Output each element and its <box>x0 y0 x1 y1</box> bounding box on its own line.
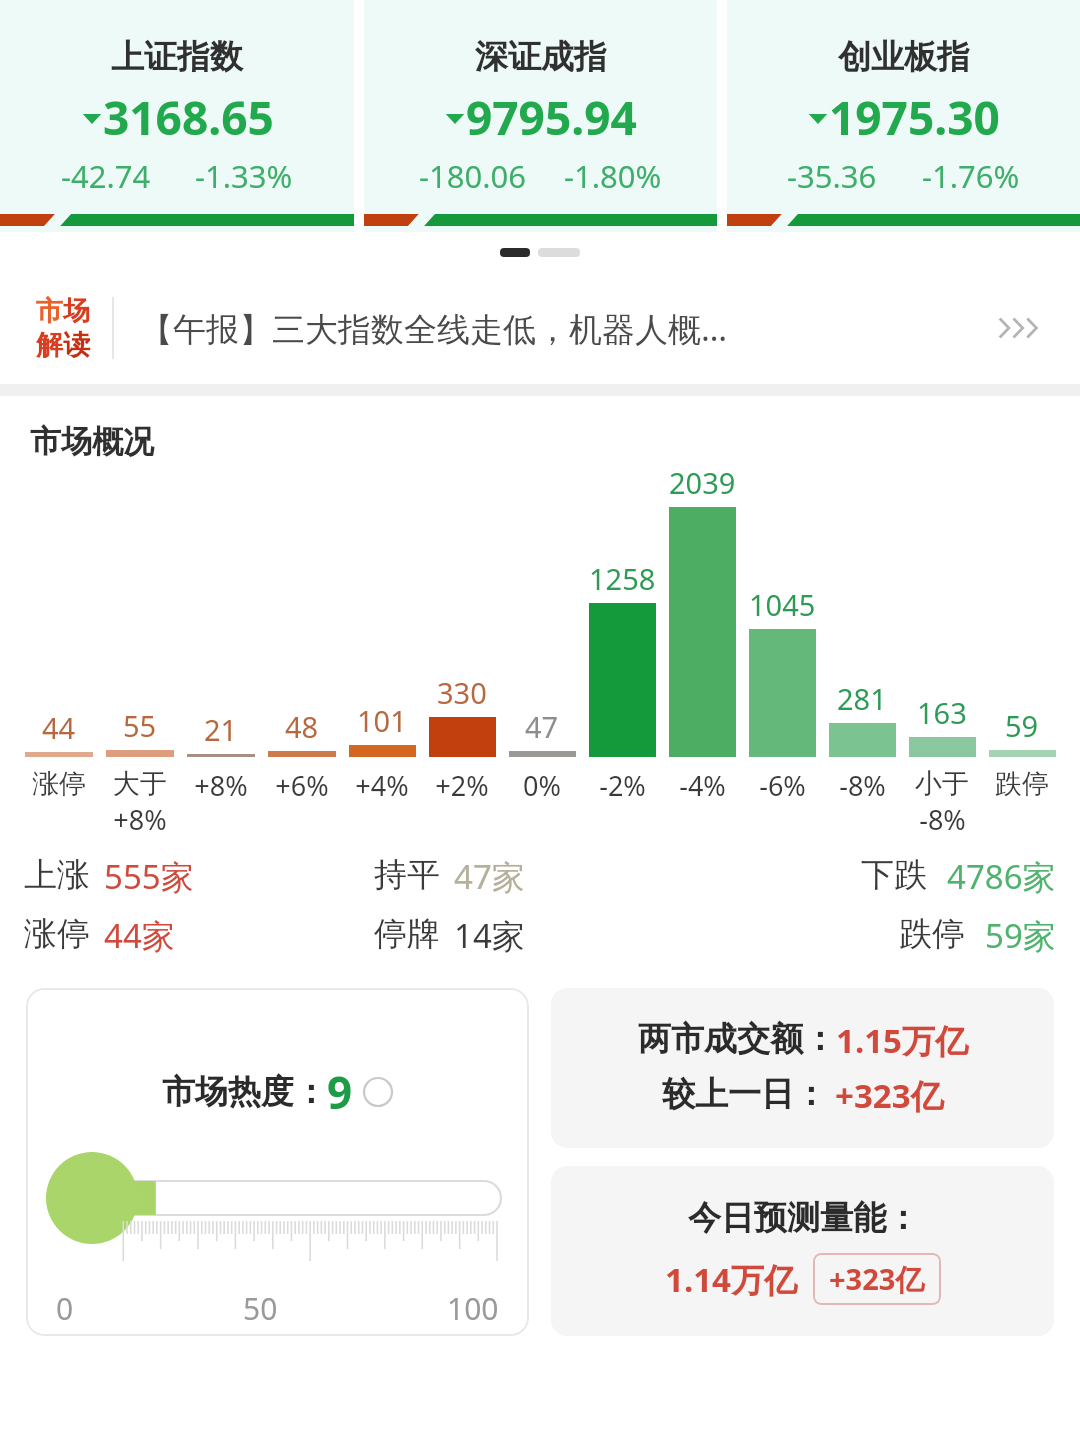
button[interactable]: 上证指数 <box>0 0 354 232</box>
staticText: 停牌 <box>374 913 440 955</box>
staticText: 下跌 <box>861 854 927 896</box>
staticText: 今日预测量能： <box>688 1197 919 1239</box>
staticText: 上涨 <box>24 854 90 896</box>
staticText: 较上一日： <box>662 1073 827 1115</box>
staticText: 1.15万亿 <box>836 1018 968 1063</box>
staticText: 44 <box>42 708 76 747</box>
staticText: -8% <box>919 801 966 838</box>
staticText: +2% <box>435 767 489 804</box>
staticText: 1975.30 <box>829 86 1000 149</box>
staticText: 创业板指 <box>838 36 970 78</box>
staticText: 44家 <box>104 913 175 958</box>
staticText: 场 <box>63 294 90 328</box>
staticText: 1258 <box>589 559 656 598</box>
staticText: 跌停 <box>995 767 1049 801</box>
staticText: 两市成交额： <box>638 1018 836 1060</box>
staticText: -42.74 <box>61 155 151 197</box>
button[interactable]: 深证成指 <box>364 0 717 232</box>
staticText: -6% <box>759 767 806 804</box>
staticText: 21 <box>204 710 238 749</box>
staticText: 47 <box>525 707 559 746</box>
staticText: +323亿 <box>829 1259 925 1299</box>
staticText: 163 <box>917 693 967 732</box>
staticText: 55 <box>123 706 157 745</box>
staticText: 59 <box>1005 706 1039 745</box>
staticText: 涨停 <box>32 767 86 801</box>
staticText: +6% <box>275 767 329 804</box>
staticText: 14家 <box>454 913 525 958</box>
staticText: 解 <box>36 328 63 362</box>
staticText: -1.33% <box>195 155 293 197</box>
button[interactable]: 两市成交额： <box>551 988 1054 1148</box>
staticText: +4% <box>355 767 409 804</box>
staticText: 市场概况 <box>30 422 154 461</box>
staticText: 深证成指 <box>475 36 607 78</box>
button[interactable]: 创业板指 <box>727 0 1080 232</box>
staticText: 100 <box>447 1288 499 1329</box>
staticText: 4786家 <box>947 854 1056 899</box>
staticText: 1.14万亿 <box>665 1257 797 1302</box>
staticText: 48 <box>285 707 319 746</box>
staticText: +8% <box>194 767 248 804</box>
staticText: 47家 <box>454 854 525 899</box>
staticText: 0 <box>56 1288 74 1329</box>
staticText: -4% <box>679 767 726 804</box>
staticText: 大于 <box>113 767 167 801</box>
staticText: 281 <box>837 679 887 718</box>
staticText: 小于 <box>915 767 969 801</box>
button[interactable]: 今日预测量能： <box>551 1166 1054 1336</box>
staticText: +8% <box>113 801 167 838</box>
staticText: 3168.65 <box>103 86 274 149</box>
button[interactable]: 市场热度： <box>26 988 529 1336</box>
staticText: -1.80% <box>564 155 662 197</box>
staticText: -35.36 <box>787 155 877 197</box>
staticText: 50 <box>243 1288 278 1329</box>
staticText: 9795.94 <box>466 86 637 149</box>
staticText: 101 <box>357 701 407 740</box>
staticText: 市场热度： <box>162 1071 327 1113</box>
staticText: -1.76% <box>922 155 1020 197</box>
staticText: 市 <box>36 294 63 328</box>
staticText: 持平 <box>374 854 440 896</box>
staticText: 跌停 <box>899 913 965 955</box>
button[interactable]: 市 <box>0 272 1080 384</box>
staticText: 59家 <box>985 913 1056 958</box>
staticText: 【午报】三大指数全线走低，机器人概… <box>140 306 984 351</box>
staticText: 涨停 <box>24 913 90 955</box>
staticText: 330 <box>437 673 487 712</box>
staticText: 上证指数 <box>111 36 243 78</box>
staticText: 9 <box>327 1062 353 1122</box>
button[interactable]: 更多 <box>984 293 1054 363</box>
staticText: 读 <box>63 328 90 362</box>
staticText: -2% <box>599 767 646 804</box>
staticText: 555家 <box>104 854 194 899</box>
staticText: 1045 <box>749 585 816 624</box>
staticText: 0% <box>523 767 561 804</box>
staticText: 2039 <box>669 463 736 502</box>
staticText: -180.06 <box>419 155 526 197</box>
staticText: -8% <box>839 767 886 804</box>
staticText: +323亿 <box>835 1073 944 1118</box>
